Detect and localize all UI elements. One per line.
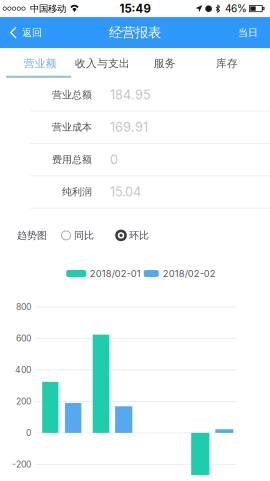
staticText: 2018/02-01 xyxy=(90,268,141,279)
button[interactable]: 库存 xyxy=(196,48,258,79)
button[interactable]: 服务 xyxy=(134,48,196,79)
staticText: 15.04 xyxy=(110,184,141,200)
button[interactable]: 营业额 xyxy=(9,48,71,79)
staticText: 2018/02-02 xyxy=(163,268,216,279)
staticText: 0 xyxy=(110,152,118,167)
staticText: 800 xyxy=(16,302,31,312)
staticText: 169.91 xyxy=(110,119,148,135)
staticText: 0 xyxy=(26,428,31,438)
staticText: 46% xyxy=(225,3,247,15)
staticText: 当日 xyxy=(238,26,258,39)
staticText: 经营报表 xyxy=(109,24,161,41)
button[interactable]: 返回 xyxy=(0,17,50,48)
staticText: 环比 xyxy=(129,229,149,242)
button[interactable]: 同比 xyxy=(47,224,94,247)
staticText: 库存 xyxy=(216,57,238,70)
staticText: 营业额 xyxy=(24,57,57,70)
button[interactable]: 当日 xyxy=(228,17,270,48)
staticText: -200 xyxy=(12,459,31,470)
staticText: 15:49 xyxy=(119,2,150,15)
staticText: 营业成本 xyxy=(52,121,92,133)
staticText: 中国移动 xyxy=(30,3,66,14)
staticText: 同比 xyxy=(74,229,94,242)
staticText: 营业总额 xyxy=(52,88,92,101)
staticText: 费用总额 xyxy=(52,153,92,166)
button[interactable]: 环比 xyxy=(94,224,149,247)
staticText: 184.95 xyxy=(110,87,151,102)
staticText: 200 xyxy=(16,396,31,407)
button[interactable]: 收入与支出 xyxy=(71,48,134,79)
staticText: 600 xyxy=(16,333,31,344)
staticText: 趋势图 xyxy=(17,229,47,242)
staticText: 返回 xyxy=(22,26,42,39)
staticText: 收入与支出 xyxy=(75,57,130,70)
staticText: 纯利润 xyxy=(62,186,92,198)
staticText: 服务 xyxy=(154,57,176,70)
staticText: 400 xyxy=(15,365,31,375)
